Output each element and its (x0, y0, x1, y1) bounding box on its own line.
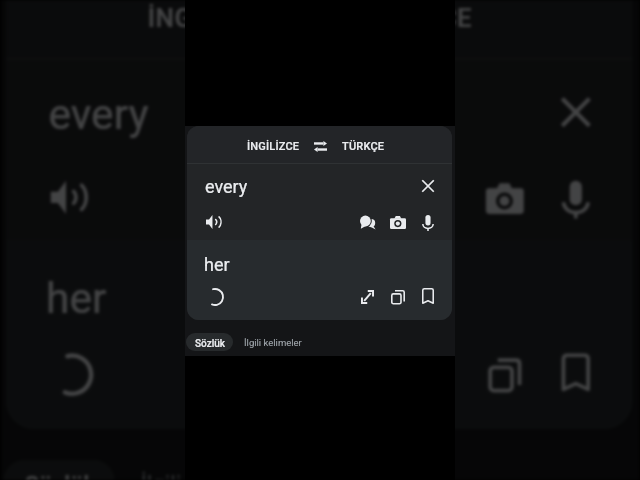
button[interactable]: Save (418, 286, 438, 306)
button[interactable]: Swap languages (313, 138, 328, 154)
staticText: İNGİLİZCE (247, 140, 300, 153)
staticText: her (204, 254, 230, 275)
button[interactable]: TÜRKÇE (155, 136, 201, 156)
button[interactable]: Clear (417, 175, 439, 197)
button[interactable]: Copy (203, 287, 223, 307)
button[interactable]: Conversation (358, 212, 378, 232)
button[interactable]: Conversation (173, 212, 193, 232)
staticText: every (205, 176, 248, 197)
staticText: TÜRKÇE (157, 140, 200, 153)
button[interactable]: Camera (203, 212, 223, 232)
button[interactable]: Sözlük (186, 333, 233, 351)
button[interactable]: Listen (203, 212, 223, 232)
button[interactable]: İlgili kelimeler (242, 333, 304, 351)
staticText: TÜRKÇE (342, 140, 385, 153)
button[interactable]: Fullscreen (357, 287, 377, 307)
button[interactable]: Copy (388, 287, 408, 307)
staticText: every (20, 176, 63, 197)
staticText: Sözlük (195, 338, 226, 350)
button[interactable]: TÜRKÇE (340, 136, 386, 156)
button[interactable]: Clear (232, 175, 254, 197)
button[interactable]: İNGİLİZCE (244, 136, 302, 156)
button[interactable]: Voice input (418, 213, 438, 233)
button[interactable]: Camera (388, 212, 408, 232)
button[interactable]: Fullscreen (172, 287, 192, 307)
staticText: İlgili kelimeler (244, 337, 302, 348)
